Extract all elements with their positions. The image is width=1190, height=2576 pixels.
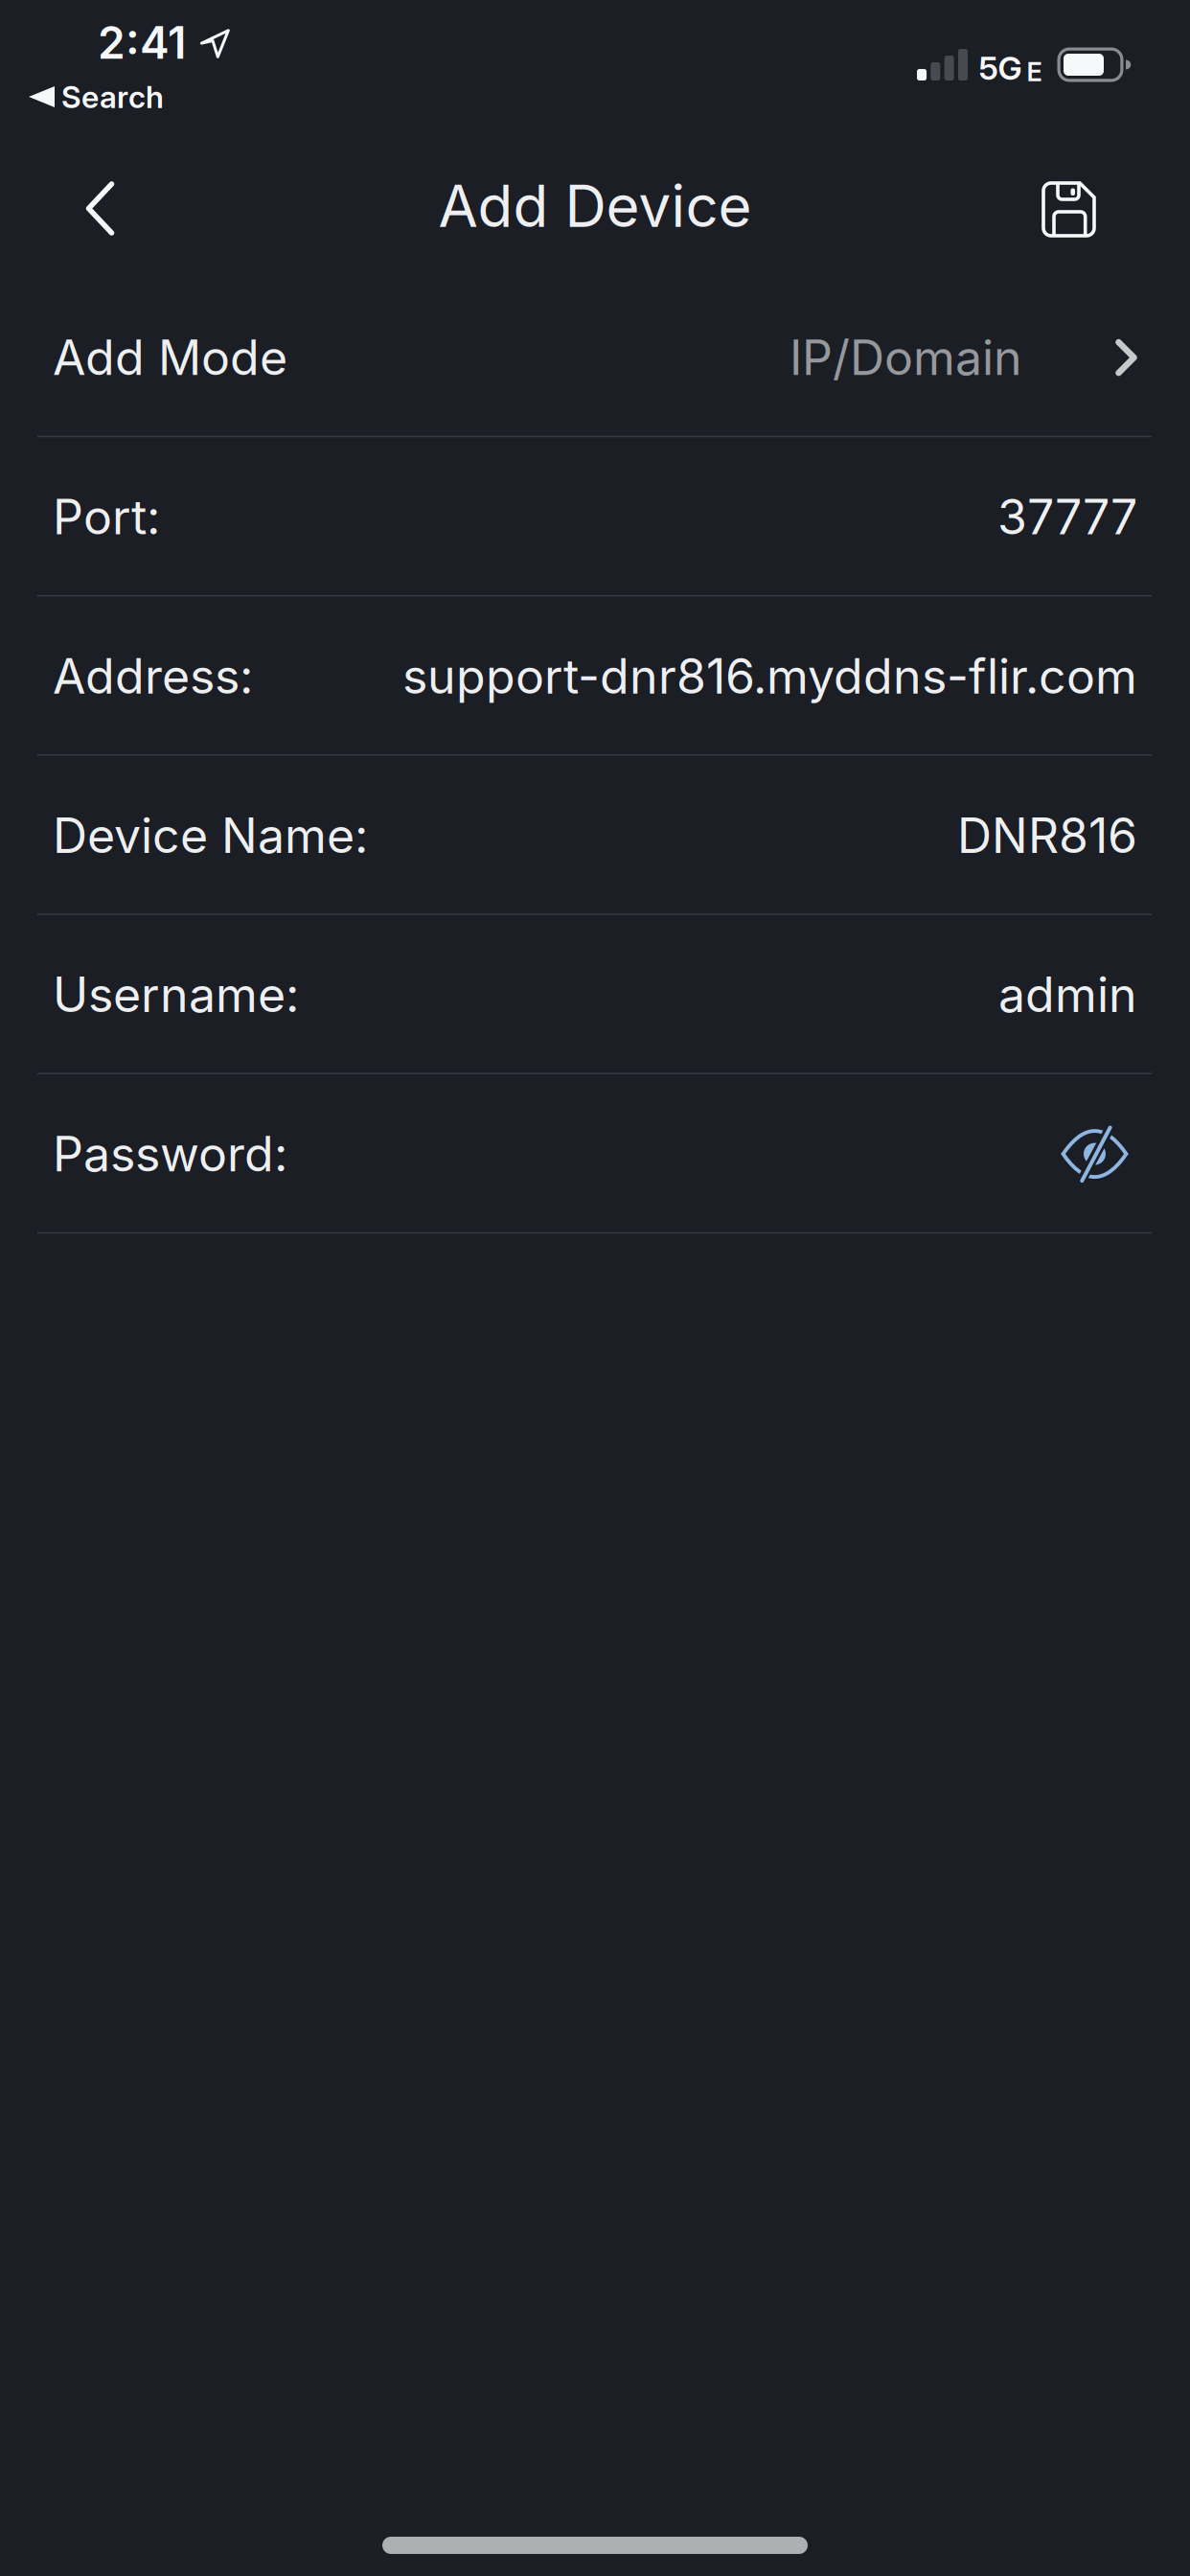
staticText: 37777	[997, 488, 1137, 546]
button[interactable]: Port:	[0, 437, 1190, 596]
staticText: Add Mode	[53, 329, 287, 387]
staticText: admin	[998, 966, 1137, 1024]
staticText: 2:41	[98, 16, 186, 69]
button[interactable]: Add Mode	[0, 278, 1190, 437]
staticText: Address:	[53, 647, 253, 705]
staticText: support-dnr816.myddns-flir.com	[402, 647, 1137, 705]
button[interactable]: Back	[74, 173, 134, 243]
staticText: Search	[61, 78, 164, 115]
staticText: Port:	[53, 488, 160, 546]
button[interactable]: Back to Search	[29, 76, 164, 118]
staticText: DNR816	[957, 806, 1137, 864]
staticText: Username:	[53, 966, 299, 1024]
staticText: E	[1027, 56, 1042, 88]
button[interactable]: Save	[1032, 172, 1106, 247]
button[interactable]: Password:	[0, 1074, 1190, 1234]
button[interactable]: Show password	[1060, 1124, 1130, 1184]
staticText: IP/Domain	[790, 329, 1022, 387]
button[interactable]: Device Name:	[0, 756, 1190, 915]
staticText: Password:	[53, 1125, 287, 1183]
staticText: Add Device	[438, 171, 752, 241]
button[interactable]: Address:	[0, 596, 1190, 756]
staticText: 5G	[979, 48, 1022, 88]
staticText: Device Name:	[53, 806, 368, 864]
button[interactable]: Username:	[0, 915, 1190, 1074]
